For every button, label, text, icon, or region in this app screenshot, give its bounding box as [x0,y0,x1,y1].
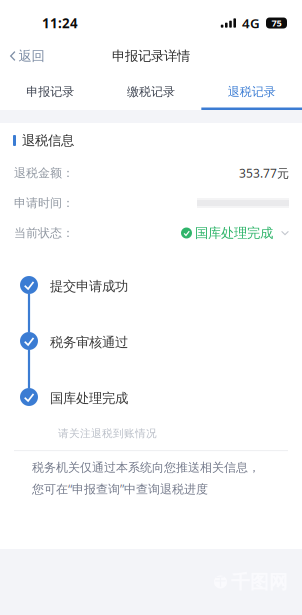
staticText: 请关注退税到账情况 [58,427,157,440]
button[interactable]: 当前状态： [0,218,302,248]
button[interactable]: 返回 [0,42,56,70]
staticText: 当前状态： [14,226,74,240]
staticText: 税务机关仅通过本系统向您推送相关信息， [32,460,260,475]
staticText: 75 [271,17,281,29]
staticText: 提交申请成功 [50,278,128,294]
staticText: 353.77元 [239,165,289,181]
staticText: 退税信息 [22,132,74,149]
staticText: 税务审核通过 [50,334,128,350]
staticText: 申报记录详情 [112,48,190,64]
staticText: 申请时间： [14,196,74,210]
staticText: 返回 [18,48,44,64]
button[interactable]: 缴税记录 [101,76,201,110]
staticText: 11:24 [42,14,78,32]
staticText: 退税记录 [228,84,276,99]
staticText: 申报记录 [26,84,74,99]
button[interactable]: 申报记录 [0,76,101,110]
staticText: 退税金额： [14,166,74,180]
staticText: 国库处理完成 [50,390,128,406]
staticText: 4G [242,14,260,32]
button[interactable]: 退税记录 [201,76,302,110]
staticText: 缴税记录 [127,84,175,99]
staticText: 您可在“申报查询”中查询退税进度 [32,481,208,497]
staticText: 国库处理完成 [195,225,273,241]
